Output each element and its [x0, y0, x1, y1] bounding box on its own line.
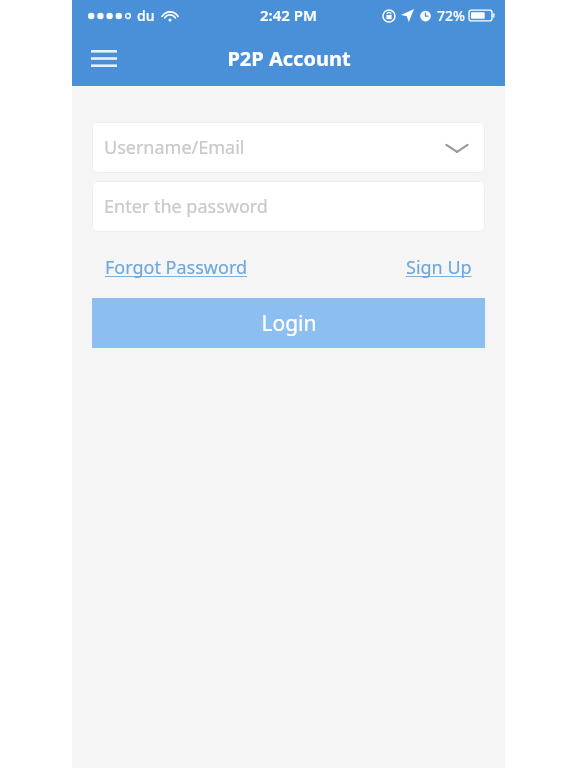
staticText: Username/Email — [104, 135, 245, 160]
button[interactable]: Login — [92, 298, 485, 348]
staticText: Forgot Password — [105, 255, 248, 280]
button[interactable]: Username/Email — [92, 122, 485, 173]
staticText: du — [137, 6, 155, 25]
staticText: Sign Up — [406, 255, 472, 280]
button[interactable]: Show saved accounts — [437, 128, 477, 168]
staticText: 72% — [437, 6, 465, 25]
button[interactable]: Forgot Password — [105, 255, 248, 280]
staticText: Enter the password — [104, 194, 268, 219]
button[interactable]: Sign Up — [406, 255, 472, 280]
button[interactable]: Enter the password — [92, 181, 485, 232]
staticText: Login — [261, 309, 317, 338]
staticText: 2:42 PM — [260, 5, 317, 25]
staticText: P2P Account — [227, 45, 351, 72]
button[interactable]: Open navigation menu — [80, 34, 128, 82]
